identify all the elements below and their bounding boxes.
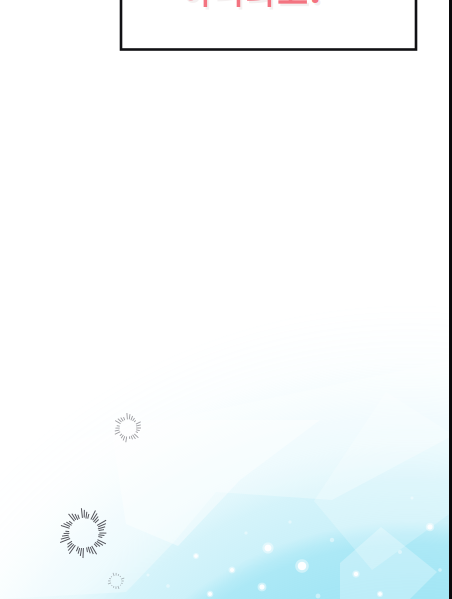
staticText: 아니라고? <box>182 0 326 14</box>
staticText: 아니라고? <box>180 0 324 12</box>
